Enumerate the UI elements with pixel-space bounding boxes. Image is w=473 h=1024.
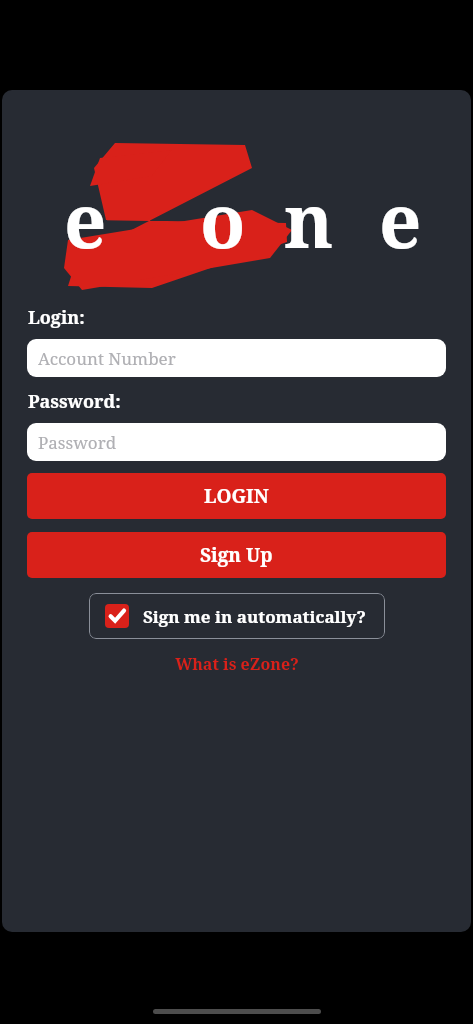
button[interactable]: Account Number (27, 339, 446, 377)
staticText: n (284, 169, 334, 270)
button[interactable]: What is eZone? (169, 651, 305, 677)
staticText: Password (38, 431, 117, 454)
staticText: o (200, 169, 246, 270)
staticText: Account Number (38, 347, 176, 370)
staticText: e (64, 169, 107, 270)
staticText: Sign me in automatically? (143, 605, 366, 628)
button[interactable]: Sign me in automatically? (89, 593, 385, 639)
staticText: Login: (28, 305, 85, 330)
staticText: e (379, 169, 422, 270)
staticText: Password: (28, 389, 121, 414)
button[interactable]: Password (27, 423, 446, 461)
button[interactable]: LOGIN (27, 473, 446, 519)
staticText: Sign Up (200, 542, 273, 568)
staticText: LOGIN (204, 483, 269, 509)
button[interactable]: Sign Up (27, 532, 446, 578)
